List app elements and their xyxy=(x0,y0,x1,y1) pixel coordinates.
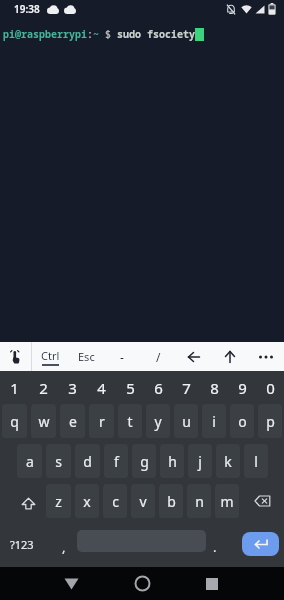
staticText: r xyxy=(99,412,105,431)
button[interactable]: - xyxy=(104,342,140,371)
button[interactable]: o xyxy=(230,404,254,438)
staticText: n xyxy=(195,492,204,511)
staticText: - xyxy=(120,349,124,365)
button[interactable]: u xyxy=(174,404,198,438)
staticText: ?123 xyxy=(10,537,34,552)
button[interactable]: a xyxy=(17,444,42,478)
staticText: a xyxy=(26,452,34,471)
button[interactable] xyxy=(176,342,212,371)
staticText: 8 xyxy=(210,378,219,398)
button[interactable]: m xyxy=(215,484,239,518)
button[interactable]: 7 xyxy=(172,375,200,401)
staticText: 7 xyxy=(182,378,191,398)
staticText: c xyxy=(112,492,119,511)
staticText: w xyxy=(38,412,50,431)
staticText: 6 xyxy=(154,378,163,398)
staticText: g xyxy=(140,452,149,471)
button[interactable]: y xyxy=(146,404,170,438)
button[interactable]: n xyxy=(187,484,211,518)
staticText: b xyxy=(167,492,176,511)
button[interactable] xyxy=(56,567,86,600)
button[interactable]: p xyxy=(258,404,282,438)
staticText: q xyxy=(10,412,19,431)
staticText: t xyxy=(127,412,133,431)
button[interactable]: t xyxy=(118,404,142,438)
staticText: o xyxy=(238,412,247,431)
button[interactable]: 6 xyxy=(144,375,172,401)
staticText: e xyxy=(69,412,77,431)
staticText: d xyxy=(83,452,92,471)
button[interactable] xyxy=(248,342,284,371)
staticText: . xyxy=(213,538,217,556)
button[interactable]: 2 xyxy=(29,375,58,401)
staticText: i xyxy=(212,412,216,431)
staticText: u xyxy=(182,412,191,431)
button[interactable]: i xyxy=(202,404,226,438)
button[interactable] xyxy=(127,567,157,600)
staticText: 0 xyxy=(266,378,275,398)
button[interactable]: 9 xyxy=(228,375,256,401)
button[interactable]: r xyxy=(89,404,114,438)
staticText: Esc xyxy=(78,349,95,364)
button[interactable]: x xyxy=(75,484,99,518)
staticText: k xyxy=(224,452,232,471)
button[interactable]: 1 xyxy=(0,375,29,401)
staticText: 19:38 xyxy=(14,2,40,16)
button[interactable]: k xyxy=(216,444,240,478)
button[interactable]: . xyxy=(209,521,239,561)
staticText: 1 xyxy=(10,378,19,398)
staticText: 4 xyxy=(97,378,106,398)
button[interactable]: 0 xyxy=(256,375,284,401)
button[interactable] xyxy=(0,342,31,371)
button[interactable]: 5 xyxy=(116,375,144,401)
staticText: , xyxy=(62,538,66,556)
button[interactable]: d xyxy=(75,444,100,478)
button[interactable]: v xyxy=(131,484,155,518)
staticText: h xyxy=(168,452,177,471)
staticText: v xyxy=(139,492,147,511)
button[interactable]: / xyxy=(140,342,176,371)
button[interactable]: z xyxy=(46,484,71,518)
staticText: 2 xyxy=(39,378,48,398)
button[interactable]: 8 xyxy=(200,375,228,401)
staticText: j xyxy=(198,452,202,471)
staticText: s xyxy=(55,452,62,471)
staticText: 5 xyxy=(126,378,135,398)
button[interactable]: q xyxy=(2,404,27,438)
staticText: m xyxy=(220,492,234,511)
staticText: pi@raspberrypi:~ $ sudo fsociety xyxy=(3,27,195,41)
staticText: 3 xyxy=(68,378,77,398)
staticText: l xyxy=(254,452,258,471)
button[interactable]: s xyxy=(46,444,71,478)
button[interactable]: g xyxy=(132,444,156,478)
staticText: x xyxy=(83,492,91,511)
button[interactable]: c xyxy=(103,484,127,518)
button[interactable]: Esc xyxy=(68,342,104,371)
staticText: y xyxy=(154,412,162,431)
button[interactable] xyxy=(197,567,227,600)
button[interactable]: f xyxy=(104,444,128,478)
button[interactable]: 4 xyxy=(87,375,116,401)
button[interactable]: ?123 xyxy=(0,521,44,561)
button[interactable]: j xyxy=(188,444,212,478)
button[interactable]: Ctrl xyxy=(32,342,68,371)
staticText: f xyxy=(114,452,119,471)
button[interactable]: e xyxy=(60,404,85,438)
button[interactable]: , xyxy=(44,521,74,561)
staticText: z xyxy=(55,492,62,511)
button[interactable] xyxy=(0,481,44,521)
button[interactable] xyxy=(242,532,279,556)
button[interactable] xyxy=(241,481,284,521)
button[interactable]: l xyxy=(244,444,268,478)
staticText: Ctrl xyxy=(41,348,60,363)
button[interactable]: h xyxy=(160,444,184,478)
button[interactable]: 3 xyxy=(58,375,87,401)
staticText: / xyxy=(156,349,161,365)
button[interactable]: b xyxy=(159,484,183,518)
staticText: 9 xyxy=(238,378,247,398)
button[interactable]: w xyxy=(31,404,56,438)
button[interactable] xyxy=(212,342,248,371)
staticText: p xyxy=(266,412,275,431)
